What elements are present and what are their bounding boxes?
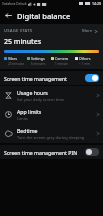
button[interactable]: App limits — [0, 105, 103, 124]
staticText: 1 minute — [55, 62, 68, 66]
staticText: Others — [79, 56, 91, 61]
staticText: Set your daily screen time — [17, 97, 64, 102]
button[interactable]: Back — [0, 7, 17, 24]
staticText: 25 minutes — [4, 37, 42, 47]
staticText: Vodafone Default — [2, 2, 27, 6]
staticText: Settings — [31, 56, 45, 61]
staticText: Turn the screen grey during sleeping hou… — [17, 135, 95, 140]
button[interactable]: Bedtime — [0, 124, 103, 143]
button[interactable]: Screen time management PIN — [0, 145, 103, 159]
staticText: App limits — [17, 108, 42, 115]
staticText: Screen time management — [4, 75, 83, 82]
staticText: Camera — [55, 56, 69, 61]
staticText: Digital balance — [17, 11, 71, 21]
staticText: Screen time management PIN — [4, 149, 83, 156]
staticText: Limits — [17, 116, 28, 121]
staticText: More — [82, 28, 93, 34]
staticText: 14:20 — [92, 1, 101, 6]
staticText: Usage hours — [17, 89, 48, 96]
button[interactable]: More — [81, 27, 99, 35]
staticText: USAGE STATS — [4, 28, 33, 34]
other: Toggle on — [85, 74, 99, 82]
staticText: 23 minutes — [8, 62, 25, 66]
button[interactable]: Usage hours — [0, 86, 103, 105]
button[interactable]: Screen time management — [0, 71, 103, 85]
staticText: Bedtime — [17, 127, 38, 134]
staticText: 6 minutes — [31, 62, 46, 66]
staticText: < 1 min — [79, 62, 90, 66]
staticText: Vibes — [8, 56, 18, 61]
other: Toggle off — [85, 148, 99, 156]
